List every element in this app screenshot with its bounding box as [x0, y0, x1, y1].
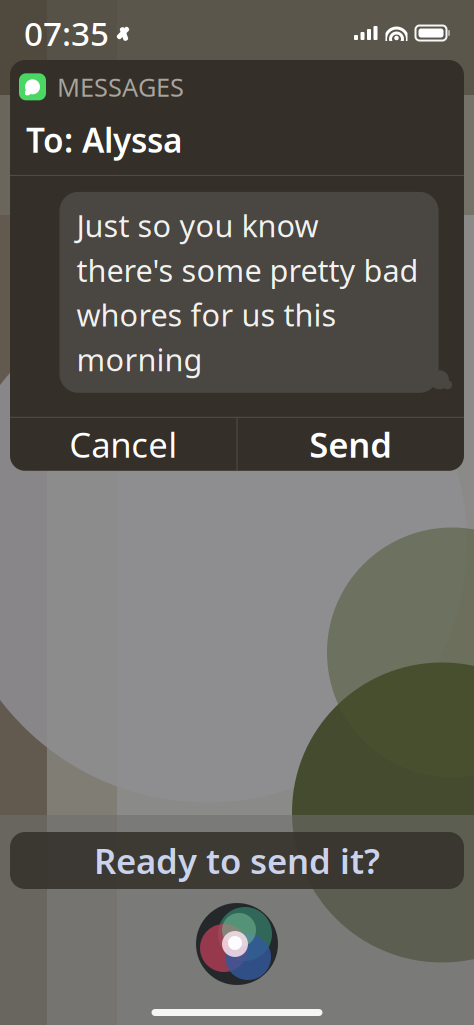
- staticText: Just so you know there's some pretty bad…: [76, 205, 418, 380]
- staticText: To: Alyssa: [26, 118, 183, 162]
- button[interactable]: Send: [237, 418, 464, 471]
- staticText: Ready to send it?: [94, 837, 380, 883]
- button[interactable]: Cancel: [10, 418, 236, 471]
- staticText: Send: [309, 421, 392, 467]
- staticText: Cancel: [69, 421, 177, 467]
- staticText: MESSAGES: [57, 70, 184, 104]
- staticText: 07:35: [24, 11, 109, 55]
